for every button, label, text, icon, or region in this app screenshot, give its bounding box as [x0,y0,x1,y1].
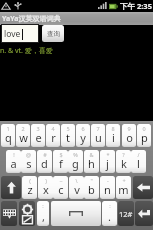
staticText: c [58,182,64,197]
button[interactable]: 查询 [42,25,64,42]
staticText: ? [122,151,125,158]
button[interactable]: 6 [76,124,90,147]
button[interactable]: ! [6,150,21,173]
staticText: 3 [36,125,40,132]
staticText: z [27,182,33,197]
staticText: 0 [142,125,146,132]
staticText: f [59,156,63,171]
staticText: % [73,151,78,158]
staticText: b [88,182,95,197]
staticText: q [5,130,12,145]
staticText: o [126,130,133,145]
button[interactable]: " [84,176,99,199]
button[interactable]: & [84,150,99,173]
staticText: , [42,209,45,224]
staticText: 8 [111,125,115,132]
staticText: : [109,202,111,209]
staticText: 12# [119,209,133,219]
staticText: 6 [81,125,85,132]
button[interactable]: Backspace [133,176,153,199]
button[interactable]: ~ [53,176,68,199]
staticText: 5 [66,125,70,132]
staticText: & [89,151,94,158]
staticText: love [4,28,21,40]
button[interactable]: Enter [135,201,153,226]
button[interactable]: ) [38,176,53,199]
staticText: / [137,151,140,158]
staticText: 4 [51,125,55,132]
button[interactable]: 4 [46,124,60,147]
staticText: y [80,130,86,145]
button[interactable]: % [68,150,83,173]
staticText: k [121,156,127,171]
staticText: p [141,130,148,145]
button[interactable]: \ [69,176,84,199]
button[interactable]: * [100,150,115,173]
button[interactable]: : [102,201,117,226]
staticText: j [106,156,109,171]
button[interactable]: 7 [91,124,105,147]
staticText: h [88,156,95,171]
button[interactable]: ? [116,150,131,173]
staticText: ( [29,177,31,184]
staticText: " [90,177,93,184]
button[interactable]: # [37,150,52,173]
staticText: \ [75,177,78,184]
staticText: x [43,182,49,197]
staticText: u [95,130,102,145]
staticText: 2 [21,125,25,132]
staticText: ! [13,151,15,158]
staticText: 查询 [47,30,60,38]
staticText: # [43,151,47,158]
staticText: . [108,209,111,224]
button[interactable]: : [37,201,49,226]
staticText: * [106,151,110,158]
staticText: i [112,130,115,145]
staticText: v [74,182,80,197]
staticText: ~ [59,177,63,184]
staticText: s [26,156,32,171]
staticText: YaYa汉英双语词典 [2,14,61,24]
staticText: e [35,130,42,145]
staticText: n. & vt. 爱，喜爱 [0,46,53,56]
staticText: g [72,156,79,171]
staticText: @ [26,151,31,158]
button[interactable]: Space [51,201,101,226]
button[interactable]: / [131,150,146,173]
staticText: w [19,130,28,145]
button[interactable]: 8 [106,124,120,147]
staticText: l [137,156,140,171]
staticText: a [10,156,17,171]
staticText: - [107,177,109,184]
button[interactable]: 0 [137,124,151,147]
staticText: r [51,130,56,145]
button[interactable]: 1 [1,124,15,147]
staticText: $ [59,151,63,158]
button[interactable]: 2 [16,124,30,147]
button[interactable]: Switch keyboard [1,201,17,226]
staticText: + [122,177,126,184]
button[interactable]: ( [22,176,37,199]
staticText: m [118,182,129,197]
button[interactable]: 5 [61,124,75,147]
staticText: t [66,130,70,145]
staticText: 9 [127,125,131,132]
staticText: : [42,202,44,209]
button[interactable]: love [2,25,38,42]
button[interactable]: @ [21,150,36,173]
staticText: ) [45,177,47,184]
staticText: 7 [96,125,100,132]
button[interactable]: 3 [31,124,45,147]
staticText: 1 [6,125,10,132]
button[interactable]: Numbers and symbols [118,201,134,226]
button[interactable]: + [116,176,131,199]
staticText: d [41,156,48,171]
button[interactable]: Settings [19,201,35,226]
button[interactable]: 9 [122,124,136,147]
staticText: 下午 2:35 [120,1,152,11]
button[interactable]: $ [53,150,68,173]
button[interactable]: - [100,176,115,199]
staticText: n [104,182,111,197]
button[interactable]: Shift [1,176,21,199]
